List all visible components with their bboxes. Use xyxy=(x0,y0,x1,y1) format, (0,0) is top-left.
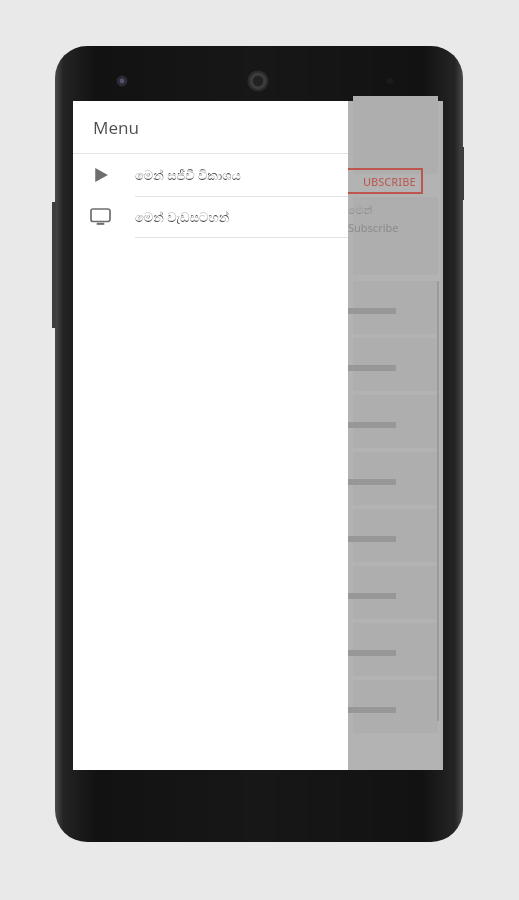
button[interactable] xyxy=(353,680,438,733)
staticText: මෙන් සජීවී විකාශය xyxy=(135,166,241,184)
button[interactable]: මෙන් xyxy=(353,197,438,275)
staticText: Menu xyxy=(93,116,140,139)
button[interactable] xyxy=(353,623,438,676)
button[interactable]: මෙන් සජීවී විකාශය xyxy=(73,154,348,196)
button[interactable] xyxy=(353,566,438,619)
button[interactable]: Subscribe xyxy=(342,169,422,193)
button[interactable] xyxy=(353,395,438,448)
button[interactable]: මෙන් වැඩසටහන් xyxy=(73,197,348,237)
button[interactable] xyxy=(353,338,438,391)
button[interactable] xyxy=(353,452,438,505)
staticText: මෙන් xyxy=(348,205,373,216)
button[interactable] xyxy=(353,509,438,562)
button[interactable] xyxy=(353,281,438,334)
button[interactable]: Menu xyxy=(73,101,348,153)
staticText: මෙන් වැඩසටහන් xyxy=(135,208,230,226)
staticText: Subscribe xyxy=(348,220,399,235)
staticText: UBSCRIBE xyxy=(363,174,416,189)
